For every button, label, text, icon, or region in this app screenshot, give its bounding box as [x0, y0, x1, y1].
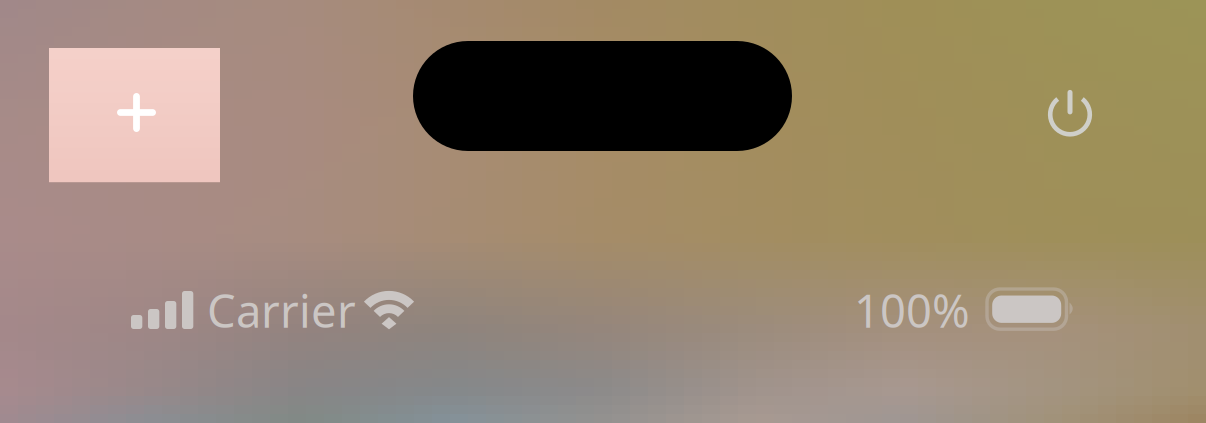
button[interactable]: Add widget	[49, 48, 220, 181]
button[interactable]: Power	[1046, 85, 1094, 135]
staticText: 100%	[854, 280, 970, 340]
staticText: Carrier	[207, 280, 356, 340]
